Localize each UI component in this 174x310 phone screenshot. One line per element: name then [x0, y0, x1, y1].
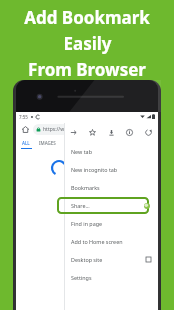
- staticText: Desktop site: [71, 256, 103, 263]
- button[interactable]: IMAGES: [39, 140, 56, 146]
- button[interactable]: Reload: [143, 127, 154, 138]
- staticText: New incognito tab: [71, 166, 118, 173]
- staticText: 7:55: [19, 114, 28, 120]
- button[interactable]: Page info: [124, 127, 135, 138]
- button[interactable]: Settings: [64, 268, 158, 286]
- staticText: IMAGES: [39, 140, 56, 146]
- button[interactable]: Share...: [64, 196, 158, 214]
- staticText: Bookmarks: [71, 184, 100, 191]
- button[interactable]: https://w: [33, 124, 155, 135]
- button[interactable]: Bookmarks: [64, 178, 158, 196]
- staticText: Share...: [71, 202, 90, 209]
- staticText: Settings: [71, 274, 92, 281]
- staticText: Easily: [63, 32, 112, 55]
- button[interactable]: Download: [106, 127, 117, 138]
- button[interactable]: ALL: [22, 140, 30, 146]
- button[interactable]: Desktop site: [64, 250, 158, 268]
- staticText: Find in page: [71, 220, 103, 227]
- button[interactable]: Add to Home screen: [64, 232, 158, 250]
- staticText: https://w: [43, 126, 65, 133]
- staticText: From Browser: [28, 58, 146, 81]
- button[interactable]: Home: [19, 123, 31, 135]
- button[interactable]: Forward: [68, 127, 79, 138]
- button[interactable]: Bookmark: [87, 127, 98, 138]
- button[interactable]: New incognito tab: [64, 160, 158, 178]
- staticText: Add Bookmark: [24, 6, 150, 29]
- button[interactable]: Find in page: [64, 214, 158, 232]
- button[interactable]: New tab: [64, 142, 158, 160]
- staticText: Add to Home screen: [71, 238, 123, 245]
- staticText: New tab: [71, 148, 92, 155]
- staticText: ALL: [22, 140, 30, 146]
